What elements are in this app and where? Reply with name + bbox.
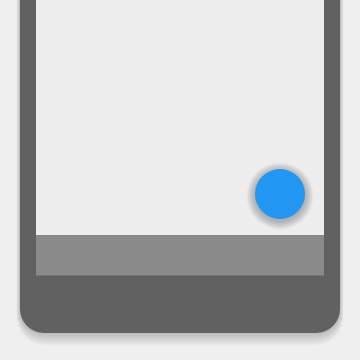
button[interactable]: Add <box>255 169 305 219</box>
